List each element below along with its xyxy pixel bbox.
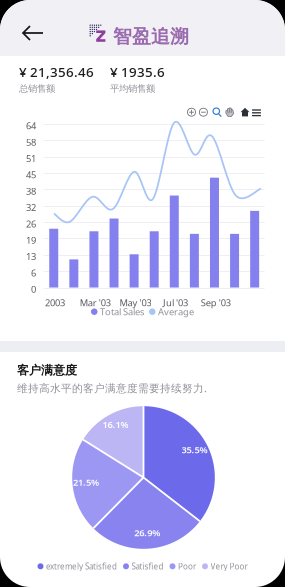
staticText: extremely Satisfied — [46, 561, 117, 572]
staticText: Average — [158, 305, 194, 318]
button[interactable]: Pan — [225, 107, 234, 117]
button[interactable]: Zoom out — [199, 108, 208, 117]
staticText: Satisfied — [131, 561, 163, 572]
staticText: 2003 — [45, 296, 65, 309]
staticText: 19 — [26, 234, 36, 246]
staticText: ¥ 21,356.46 — [19, 63, 94, 81]
staticText: 45 — [26, 169, 36, 181]
staticText: 64 — [26, 119, 36, 132]
staticText: 21.5% — [73, 476, 99, 488]
button[interactable]: Menu — [252, 107, 261, 117]
staticText: 平均销售额 — [110, 83, 155, 94]
staticText: Jul '03 — [163, 296, 188, 309]
staticText: Total Sales — [100, 305, 144, 318]
staticText: 智盈追溯 — [113, 25, 189, 48]
staticText: 6 — [31, 267, 36, 279]
staticText: Poor — [178, 561, 196, 572]
staticText: 总销售额 — [19, 83, 55, 94]
staticText: May '03 — [119, 296, 151, 309]
staticText: Very Poor — [210, 561, 247, 572]
button[interactable]: Zoom in — [187, 108, 196, 117]
staticText: ¥ 1935.6 — [110, 63, 165, 81]
staticText: 0 — [31, 283, 36, 295]
staticText: 维持高水平的客户满意度需要持续努力. — [17, 381, 207, 395]
staticText: Mar '03 — [80, 296, 111, 309]
button[interactable]: Reset view — [240, 107, 250, 117]
staticText: 26 — [26, 218, 36, 230]
staticText: 13 — [26, 250, 36, 263]
staticText: 客户满意度 — [17, 363, 77, 378]
button[interactable]: Zoom to selection — [212, 107, 222, 117]
staticText: Sep '03 — [201, 296, 231, 309]
staticText: 38 — [26, 185, 36, 197]
staticText: 35.5% — [181, 443, 207, 456]
staticText: 51 — [26, 152, 36, 165]
staticText: 26.9% — [134, 526, 160, 539]
staticText: 16.1% — [102, 418, 128, 431]
staticText: 32 — [26, 201, 36, 214]
staticText: 58 — [26, 136, 36, 148]
button[interactable]: Back — [16, 18, 50, 48]
